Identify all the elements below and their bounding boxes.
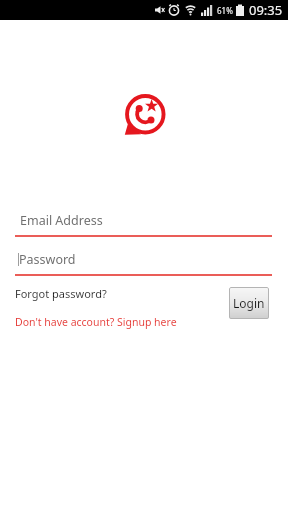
button[interactable]: Email Address bbox=[15, 203, 272, 237]
staticText: Email Address bbox=[20, 212, 103, 229]
button[interactable]: Forgot password? bbox=[15, 286, 107, 301]
staticText: Don't have account? Signup here bbox=[15, 315, 177, 329]
button[interactable]: Password bbox=[15, 242, 272, 276]
staticText: 09:35 bbox=[249, 1, 283, 19]
button[interactable]: Login bbox=[229, 287, 269, 319]
staticText: Password bbox=[19, 251, 76, 268]
staticText: 61% bbox=[217, 5, 233, 16]
staticText: Login bbox=[233, 295, 265, 311]
button[interactable]: Don't have account? Signup here bbox=[15, 315, 177, 329]
staticText: Forgot password? bbox=[15, 286, 107, 301]
